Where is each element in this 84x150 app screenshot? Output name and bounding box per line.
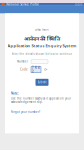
staticText: Note: xyxy=(11,92,19,95)
staticText: सर्विस विभाग xyxy=(35,28,49,32)
staticText: National Service Portal xyxy=(6,3,39,6)
staticText: ⟳ xyxy=(44,67,47,72)
staticText: Code xyxy=(20,68,28,71)
button[interactable]: Refresh captcha xyxy=(44,68,47,72)
button[interactable]: Submit xyxy=(35,79,48,86)
staticText: आवेदन की स्थिति xyxy=(24,35,60,42)
staticText: 7 K 4 2 xyxy=(32,66,40,73)
staticText: Enter the details shown below to continu… xyxy=(11,52,72,56)
staticText: Forgot your number? xyxy=(11,110,40,114)
staticText: Login xyxy=(74,3,82,6)
staticText: Submit xyxy=(37,80,46,84)
staticText: Use the number exactly as it appears on … xyxy=(11,97,71,104)
staticText: Application Status Enquiry System xyxy=(7,43,76,48)
staticText: Number xyxy=(17,60,28,63)
